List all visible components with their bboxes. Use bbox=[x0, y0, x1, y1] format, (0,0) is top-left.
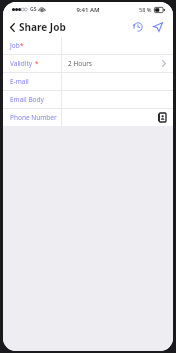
button[interactable]: History bbox=[130, 19, 146, 35]
staticText: * bbox=[20, 41, 24, 50]
button[interactable]: Send bbox=[150, 19, 166, 35]
staticText: Job bbox=[10, 41, 20, 50]
staticText: E-mail bbox=[10, 77, 29, 86]
staticText: * bbox=[35, 59, 39, 68]
staticText: Phone Number bbox=[10, 113, 57, 122]
staticText: Email Body bbox=[10, 95, 44, 104]
button[interactable]: E-mail bbox=[3, 73, 173, 90]
staticText: Validity bbox=[10, 59, 33, 68]
button[interactable]: Email Body bbox=[3, 91, 173, 108]
staticText: 9:41 AM bbox=[76, 6, 100, 14]
button[interactable]: Validity bbox=[3, 55, 173, 72]
button[interactable]: Share Job bbox=[3, 17, 72, 37]
staticText: GS bbox=[30, 6, 37, 13]
button[interactable]: Choose contact bbox=[157, 112, 167, 123]
button[interactable]: Job bbox=[3, 37, 173, 54]
staticText: Share Job bbox=[19, 20, 66, 34]
button[interactable]: Phone Number bbox=[3, 109, 173, 126]
staticText: 58 % bbox=[139, 6, 152, 13]
staticText: 2 Hours bbox=[68, 59, 162, 68]
